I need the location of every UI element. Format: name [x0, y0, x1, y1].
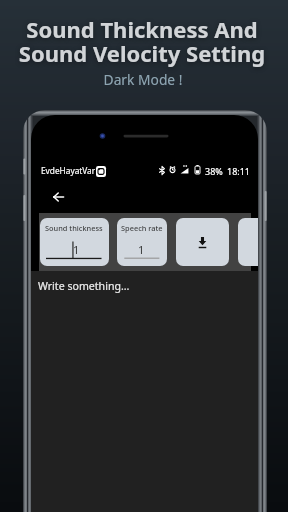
button[interactable]: Download [176, 218, 229, 266]
button[interactable]: Back [47, 186, 69, 208]
staticText: 18:11 [227, 165, 251, 177]
button[interactable]: Sound thickness [40, 218, 109, 266]
staticText: Sound thickness [45, 223, 103, 233]
button[interactable]: Speech rate [117, 218, 167, 266]
staticText: Dark Mode ! [0, 70, 287, 89]
staticText: EvdeHayatVar [41, 165, 96, 176]
staticText: Speech rate [121, 223, 163, 233]
button[interactable] [238, 218, 258, 266]
staticText: 1 [138, 242, 145, 257]
staticText: Sound Thickness And Sound Velocity Setti… [0, 14, 286, 68]
staticText: Write something… [38, 279, 130, 293]
staticText: 38% [205, 165, 223, 177]
staticText: 1 [73, 242, 80, 257]
